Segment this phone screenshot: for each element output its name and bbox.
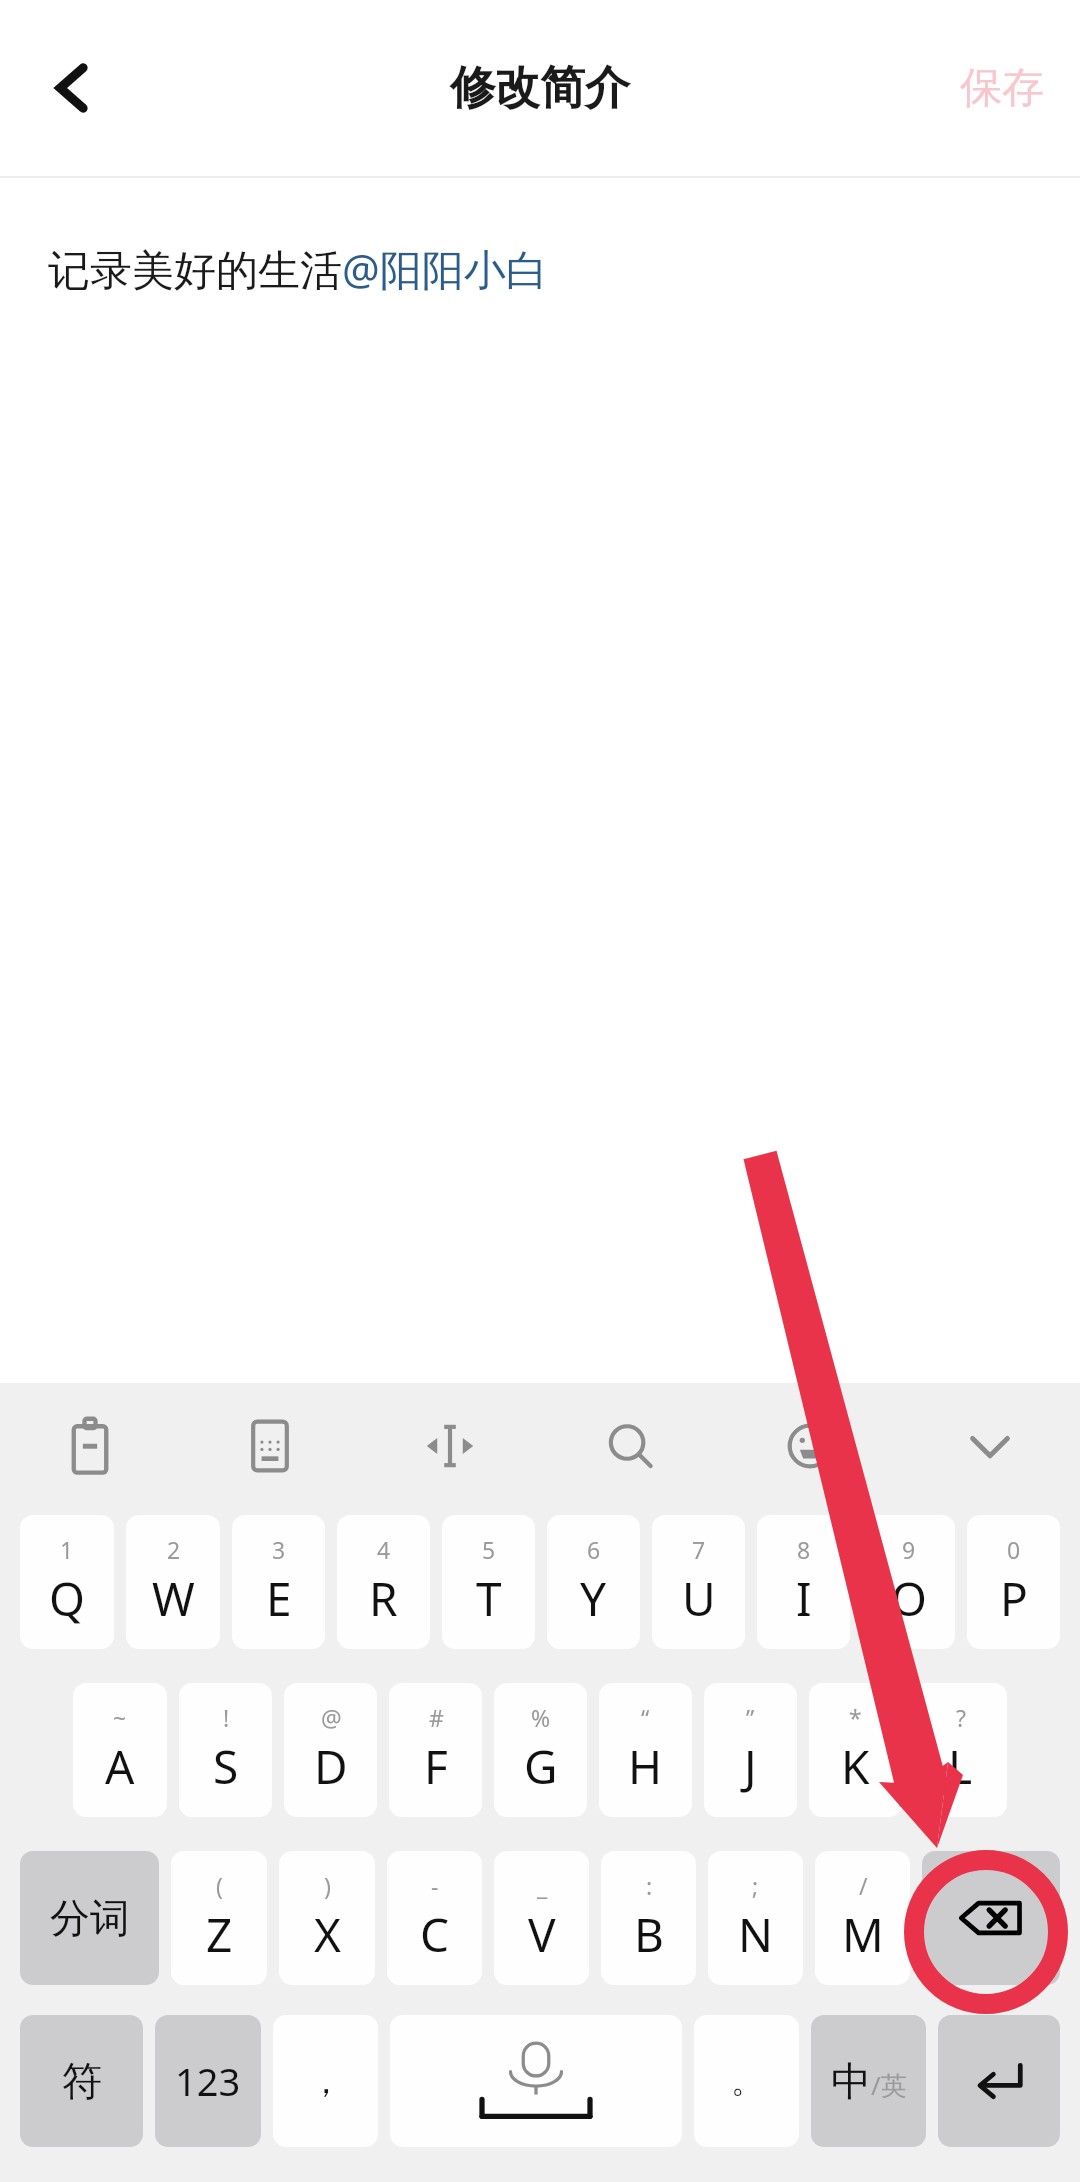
button[interactable]: Backspace bbox=[922, 1851, 1060, 1985]
staticText: M bbox=[842, 1903, 884, 1966]
button[interactable]: 保存 bbox=[946, 46, 1058, 131]
staticText: V bbox=[528, 1903, 556, 1966]
button[interactable]: 3 bbox=[232, 1515, 325, 1649]
staticText: O bbox=[891, 1567, 927, 1630]
staticText: ， bbox=[309, 2060, 343, 2103]
staticText: 4 bbox=[377, 1534, 391, 1565]
staticText: S bbox=[213, 1735, 239, 1798]
staticText: 记录美好的生活@阳阳小白 bbox=[48, 240, 548, 297]
staticText: D bbox=[314, 1735, 348, 1798]
staticText: J bbox=[744, 1735, 757, 1798]
staticText: _ bbox=[537, 1870, 548, 1901]
button[interactable]: / bbox=[815, 1851, 910, 1985]
staticText: 7 bbox=[692, 1534, 706, 1565]
button[interactable]: 9 bbox=[862, 1515, 955, 1649]
button[interactable]: 提到朋友 bbox=[46, 2050, 314, 2144]
staticText: 3 bbox=[272, 1534, 286, 1565]
button[interactable]: 。 bbox=[694, 2015, 799, 2147]
staticText: C bbox=[420, 1903, 450, 1966]
button[interactable]: 7 bbox=[652, 1515, 745, 1649]
staticText: A bbox=[105, 1735, 135, 1798]
button[interactable]: “ bbox=[599, 1683, 692, 1817]
button[interactable]: 2 bbox=[126, 1515, 220, 1649]
staticText: F bbox=[424, 1735, 448, 1798]
staticText: E bbox=[266, 1567, 292, 1630]
staticText: R bbox=[369, 1567, 398, 1630]
staticText: I bbox=[796, 1567, 812, 1630]
button[interactable]: ? bbox=[914, 1683, 1007, 1817]
button[interactable]: Clipboard bbox=[0, 1383, 180, 1509]
staticText: ? bbox=[956, 1702, 966, 1733]
button[interactable]: ~ bbox=[73, 1683, 167, 1817]
button[interactable]: 5 bbox=[442, 1515, 535, 1649]
button[interactable]: * bbox=[809, 1683, 902, 1817]
staticText: # bbox=[429, 1702, 444, 1733]
button[interactable]: Move cursor bbox=[360, 1383, 540, 1509]
staticText: 123 bbox=[175, 2055, 241, 2107]
button[interactable]: 4 bbox=[337, 1515, 430, 1649]
button[interactable]: @ bbox=[284, 1683, 377, 1817]
staticText: % bbox=[531, 1702, 551, 1733]
staticText: @ bbox=[321, 1702, 342, 1733]
staticText: K bbox=[841, 1735, 870, 1798]
staticText: L bbox=[948, 1735, 973, 1798]
staticText: 保存 bbox=[960, 62, 1044, 115]
staticText: Q bbox=[49, 1567, 85, 1630]
staticText: 修改简介 bbox=[450, 60, 630, 117]
staticText: 符 bbox=[62, 2056, 102, 2106]
button[interactable]: Hide keyboard bbox=[900, 1383, 1080, 1509]
button[interactable]: Emoji bbox=[720, 1383, 900, 1509]
button[interactable]: Space / Voice input bbox=[390, 2015, 682, 2147]
staticText: B bbox=[634, 1903, 664, 1966]
button[interactable]: 1 bbox=[20, 1515, 114, 1649]
staticText: ( bbox=[216, 1870, 223, 1901]
button[interactable]: 符 bbox=[20, 2015, 143, 2147]
button[interactable]: _ bbox=[494, 1851, 589, 1985]
button[interactable]: : bbox=[601, 1851, 696, 1985]
staticText: / bbox=[859, 1870, 868, 1901]
staticText: 提到朋友 bbox=[128, 2072, 288, 2122]
staticText: - bbox=[431, 1870, 439, 1901]
staticText: : bbox=[646, 1870, 653, 1901]
staticText: Z bbox=[206, 1903, 233, 1966]
button[interactable]: ) bbox=[279, 1851, 375, 1985]
staticText: 。 bbox=[731, 2061, 763, 2101]
button[interactable]: # bbox=[389, 1683, 482, 1817]
staticText: 分词 bbox=[50, 1893, 130, 1943]
button[interactable]: 8 bbox=[757, 1515, 850, 1649]
staticText: 5 bbox=[482, 1534, 496, 1565]
staticText: ) bbox=[324, 1870, 331, 1901]
button[interactable]: ; bbox=[708, 1851, 803, 1985]
staticText: * bbox=[849, 1702, 862, 1733]
button[interactable]: ( bbox=[171, 1851, 267, 1985]
staticText: Y bbox=[580, 1567, 607, 1630]
button[interactable]: 中/英 bbox=[811, 2015, 926, 2147]
staticText: P bbox=[1000, 1567, 1028, 1630]
button[interactable]: 6 bbox=[547, 1515, 640, 1649]
button[interactable]: Enter bbox=[938, 2015, 1060, 2147]
button[interactable]: Back bbox=[18, 33, 128, 143]
staticText: 2 bbox=[167, 1534, 181, 1565]
staticText: G bbox=[524, 1735, 558, 1798]
staticText: U bbox=[682, 1567, 716, 1630]
button[interactable]: Search bbox=[540, 1383, 720, 1509]
staticText: ; bbox=[752, 1870, 759, 1901]
button[interactable]: 123 bbox=[155, 2015, 261, 2147]
button[interactable]: ” bbox=[704, 1683, 797, 1817]
staticText: 6 bbox=[587, 1534, 601, 1565]
button[interactable]: ! bbox=[179, 1683, 272, 1817]
button[interactable]: Keyboard layout bbox=[180, 1383, 360, 1509]
staticText: N bbox=[738, 1903, 773, 1966]
staticText: W bbox=[152, 1567, 195, 1630]
button[interactable]: 0 bbox=[967, 1515, 1060, 1649]
staticText: 0 bbox=[1007, 1534, 1021, 1565]
staticText: X bbox=[314, 1903, 341, 1966]
button[interactable]: - bbox=[387, 1851, 482, 1985]
button[interactable]: % bbox=[494, 1683, 587, 1817]
staticText: ~ bbox=[113, 1702, 127, 1733]
staticText: T bbox=[476, 1567, 502, 1630]
staticText: 1 bbox=[60, 1534, 74, 1565]
button[interactable]: 分词 bbox=[20, 1851, 159, 1985]
staticText: 中/英 bbox=[831, 2056, 907, 2106]
button[interactable]: ， bbox=[273, 2015, 378, 2147]
